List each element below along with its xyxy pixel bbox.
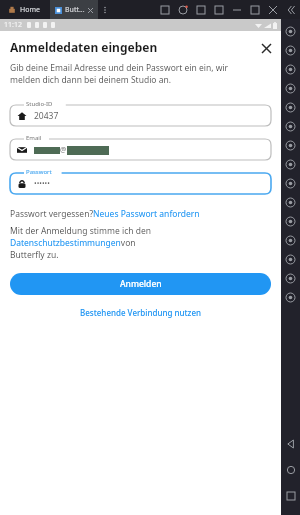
staticText: 11:12 [4, 20, 22, 30]
button[interactable]: Anmelden [10, 273, 271, 295]
button[interactable]: Maximize [246, 0, 264, 19]
button[interactable]: Home [8, 5, 40, 15]
button[interactable]: Email [10, 134, 271, 160]
button[interactable]: Close [264, 0, 282, 19]
staticText: Mit der Anmeldung stimme ich den Datensc… [10, 225, 271, 261]
staticText: Anmelden [120, 278, 162, 290]
staticText: Passwort [26, 168, 52, 176]
button[interactable]: Fold [281, 231, 300, 250]
button[interactable]: Rotate [281, 98, 300, 117]
button[interactable]: Butt... [50, 0, 98, 19]
staticText: •••••• [34, 179, 50, 189]
button[interactable]: Profile [174, 0, 192, 19]
button[interactable]: Split [210, 0, 228, 19]
button[interactable]: Volume down [281, 79, 300, 98]
staticText: 20437 [34, 110, 59, 122]
staticText: Gib deine Email Adresse und dein Passwor… [10, 62, 229, 86]
staticText: Anmeldedaten eingeben [10, 39, 158, 55]
button[interactable]: Cut [281, 174, 300, 193]
button[interactable]: Power [281, 22, 300, 41]
button[interactable]: Pin [281, 269, 300, 288]
button[interactable]: Screenshot [281, 41, 300, 60]
button[interactable]: Volume up [281, 60, 300, 79]
button[interactable]: Studio-ID [10, 100, 271, 126]
staticText: @ [60, 145, 67, 155]
button[interactable]: Schließen [257, 39, 275, 57]
button[interactable]: Location [281, 155, 300, 174]
staticText: Home [20, 5, 40, 15]
button[interactable]: Minimize [228, 0, 246, 19]
button[interactable]: Passwort [10, 168, 271, 194]
other: Close tab [88, 8, 93, 13]
button[interactable]: Recents [281, 483, 300, 509]
staticText: Studio-ID [26, 100, 53, 108]
button[interactable]: Panel [192, 0, 210, 19]
button[interactable]: More options [98, 0, 112, 19]
button[interactable]: Bestehende Verbindung nutzen [80, 307, 202, 318]
button[interactable]: Auto rotate [281, 117, 300, 136]
button[interactable]: Camera [281, 136, 300, 155]
staticText: Email [26, 134, 42, 142]
button[interactable]: Back [281, 431, 300, 457]
staticText: Butt... [65, 5, 85, 15]
button[interactable]: Device [281, 288, 300, 307]
button[interactable]: Collapse [282, 0, 300, 19]
button[interactable]: Passwort vergessen?Neues Passwort anford… [10, 208, 200, 220]
button[interactable]: Notes [281, 212, 300, 231]
button[interactable]: Files [281, 250, 300, 269]
button[interactable]: Record [281, 193, 300, 212]
staticText: Bestehende Verbindung nutzen [80, 307, 202, 318]
button[interactable]: Home [281, 457, 300, 483]
button[interactable]: Screenshot [156, 0, 174, 19]
